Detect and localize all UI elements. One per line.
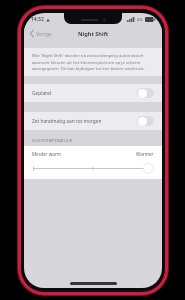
- staticText: Warmer: [136, 151, 154, 157]
- staticText: Gepland: [32, 90, 51, 97]
- button[interactable]: Kleurtemperatuur schuifregelaar: [32, 163, 154, 174]
- other: Toggle Gepland: [137, 88, 154, 98]
- other: Toggle Zet handmatig aan tot morgen: [137, 116, 154, 126]
- staticText: Met 'Night Shift' worden na zonsondergan…: [32, 53, 154, 71]
- staticText: Minder warm: [32, 151, 62, 157]
- button[interactable]: Vorige: [24, 28, 58, 39]
- button[interactable]: Gepland: [24, 84, 162, 102]
- staticText: Zet handmatig aan tot morgen: [32, 118, 102, 125]
- staticText: KLEURTEMPERATUUR: [32, 138, 73, 143]
- staticText: Vorige: [36, 30, 52, 37]
- staticText: 4G: [137, 17, 143, 23]
- staticText: Night Shift: [78, 30, 109, 38]
- button[interactable]: Zet handmatig aan tot morgen: [24, 112, 162, 130]
- staticText: 14:32: [31, 16, 44, 23]
